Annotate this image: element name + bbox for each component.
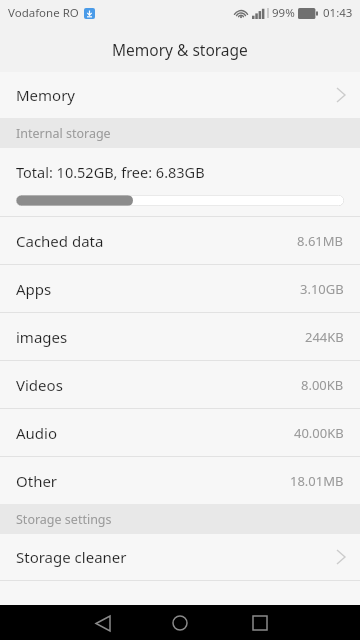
staticText: Internal storage: [16, 125, 111, 142]
staticText: Memory: [16, 85, 76, 105]
staticText: 01:43: [323, 5, 353, 21]
button[interactable]: Audio: [0, 409, 360, 456]
staticText: Memory & storage: [112, 39, 248, 60]
button[interactable]: Cached data: [0, 217, 360, 264]
button[interactable]: Other: [0, 457, 360, 504]
staticText: 40.00KB: [294, 424, 344, 442]
button[interactable]: Recent apps: [243, 606, 277, 640]
staticText: Other: [16, 471, 58, 491]
staticText: 8.00KB: [301, 376, 344, 394]
button[interactable]: Back: [86, 606, 120, 640]
button[interactable]: Storage cleaner: [0, 534, 360, 580]
staticText: 3.10GB: [300, 280, 344, 298]
staticText: Videos: [16, 375, 63, 395]
staticText: 8.61MB: [297, 232, 344, 250]
button[interactable]: Apps: [0, 265, 360, 312]
staticText: 18.01MB: [290, 472, 344, 490]
staticText: Storage settings: [16, 511, 112, 528]
button[interactable]: Memory: [0, 72, 360, 118]
staticText: Cached data: [16, 231, 104, 251]
staticText: Storage cleaner: [16, 547, 127, 567]
button[interactable]: Videos: [0, 361, 360, 408]
staticText: Vodafone RO: [8, 5, 79, 21]
button[interactable]: Home: [163, 606, 197, 640]
button[interactable]: images: [0, 313, 360, 360]
staticText: 244KB: [305, 328, 344, 346]
staticText: Apps: [16, 279, 52, 299]
staticText: images: [16, 327, 68, 347]
staticText: Total: 10.52GB, free: 6.83GB: [16, 162, 205, 182]
staticText: Audio: [16, 423, 58, 443]
staticText: 99%: [272, 5, 295, 21]
